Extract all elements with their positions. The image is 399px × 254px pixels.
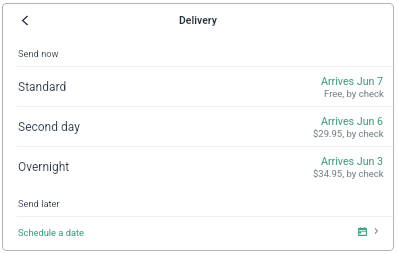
button[interactable]: Standard — [2, 67, 394, 106]
button[interactable]: Schedule a date — [2, 217, 394, 251]
button[interactable]: Overnight — [2, 147, 394, 186]
staticText: Send later — [18, 198, 60, 209]
other: Pick a date — [356, 225, 368, 237]
button[interactable]: Back — [13, 9, 35, 31]
staticText: $34.95, by check — [313, 168, 384, 179]
button[interactable]: Second day — [2, 107, 394, 146]
staticText: Schedule a date — [18, 227, 84, 238]
staticText: Free, by check — [324, 88, 384, 99]
staticText: $29.95, by check — [313, 128, 384, 139]
staticText: Arrives Jun 7 — [321, 75, 384, 88]
staticText: Standard — [18, 80, 67, 94]
staticText: Overnight — [18, 160, 70, 174]
staticText: Delivery — [179, 14, 217, 26]
staticText: Send now — [18, 48, 59, 59]
staticText: Arrives Jun 6 — [321, 115, 384, 128]
staticText: Arrives Jun 3 — [321, 155, 384, 168]
staticText: Second day — [18, 120, 80, 134]
